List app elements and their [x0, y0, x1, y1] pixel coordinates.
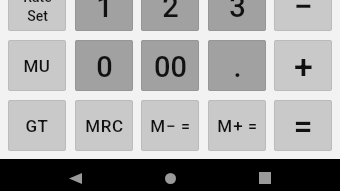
staticText: =	[293, 106, 313, 146]
staticText: 1	[96, 0, 113, 24]
staticText: MU	[23, 56, 51, 76]
staticText: 2	[162, 0, 179, 24]
staticText: .	[233, 50, 242, 84]
staticText: Rate	[23, 0, 52, 5]
staticText: M+	[217, 116, 244, 136]
button[interactable]: M+	[208, 100, 266, 151]
staticText: 00	[154, 50, 187, 84]
staticText: =	[181, 117, 190, 136]
button[interactable]: M−	[141, 100, 199, 151]
button[interactable]: Back	[61, 164, 89, 191]
staticText: 0	[96, 50, 113, 84]
staticText: MRC	[85, 116, 124, 136]
button[interactable]: Rate	[8, 0, 66, 31]
staticText: +	[294, 46, 313, 86]
button[interactable]: 00	[141, 40, 199, 91]
button[interactable]: Recent apps	[251, 164, 279, 191]
button[interactable]: .	[208, 40, 266, 91]
button[interactable]: 0	[75, 40, 133, 91]
button[interactable]: −	[274, 0, 332, 31]
button[interactable]: MRC	[75, 100, 133, 151]
button[interactable]: +	[274, 40, 332, 91]
staticText: 3	[229, 0, 246, 24]
button[interactable]: 3	[208, 0, 266, 31]
staticText: =	[248, 117, 257, 136]
button[interactable]: =	[274, 100, 332, 151]
button[interactable]: 2	[141, 0, 199, 31]
button[interactable]: GT	[8, 100, 66, 151]
staticText: −	[293, 0, 313, 26]
button[interactable]: Home	[156, 164, 184, 191]
staticText: M−	[150, 116, 177, 136]
button[interactable]: MU	[8, 40, 66, 91]
staticText: GT	[25, 116, 49, 136]
button[interactable]: 1	[75, 0, 133, 31]
staticText: Set	[27, 8, 48, 24]
